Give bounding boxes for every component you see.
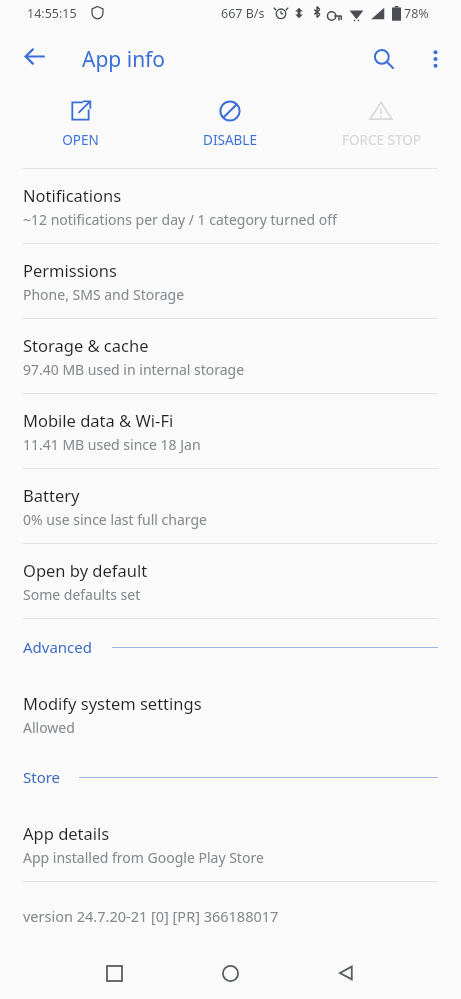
button[interactable]: Mobile data & Wi-Fi: [0, 394, 461, 468]
staticText: Advanced: [23, 637, 93, 657]
staticText: Mobile data & Wi-Fi: [23, 409, 174, 431]
button[interactable]: Modify system settings: [0, 677, 461, 751]
staticText: 97.40 MB used in internal storage: [23, 360, 245, 379]
staticText: FORCE STOP: [342, 131, 421, 149]
staticText: App installed from Google Play Store: [23, 848, 264, 867]
staticText: 14:55:15: [27, 5, 77, 22]
button[interactable]: FORCE STOP: [309, 85, 453, 157]
staticText: DISABLE: [203, 131, 257, 149]
staticText: Permissions: [23, 259, 117, 281]
button[interactable]: OPEN: [8, 85, 152, 157]
staticText: version 24.7.20-21 [0] [PR] 366188017: [23, 906, 279, 926]
button[interactable]: Notifications: [0, 169, 461, 243]
staticText: ~12 notifications per day / 1 category t…: [23, 210, 337, 229]
button[interactable]: App details: [0, 807, 461, 881]
staticText: Battery: [23, 484, 80, 506]
staticText: Notifications: [23, 184, 122, 206]
button[interactable]: Open by default: [0, 544, 461, 618]
staticText: 0% use since last full charge: [23, 510, 207, 529]
button[interactable]: Home: [207, 950, 253, 996]
button[interactable]: Back: [10, 32, 58, 80]
button[interactable]: Recent apps: [91, 950, 137, 996]
button[interactable]: Storage & cache: [0, 319, 461, 393]
button[interactable]: More options: [412, 35, 459, 82]
staticText: App details: [23, 822, 110, 844]
button[interactable]: DISABLE: [158, 85, 302, 157]
staticText: Store: [23, 767, 61, 787]
staticText: 667 B/s: [221, 5, 265, 22]
staticText: Storage & cache: [23, 334, 149, 356]
staticText: Open by default: [23, 559, 148, 581]
staticText: App info: [82, 45, 166, 74]
button[interactable]: Back: [323, 950, 369, 996]
button[interactable]: Search: [360, 35, 407, 82]
button[interactable]: Permissions: [0, 244, 461, 318]
staticText: Phone, SMS and Storage: [23, 285, 185, 304]
staticText: Modify system settings: [23, 692, 202, 714]
staticText: 11.41 MB used since 18 Jan: [23, 435, 201, 454]
button[interactable]: Battery: [0, 469, 461, 543]
staticText: OPEN: [62, 131, 99, 149]
staticText: Some defaults set: [23, 585, 141, 604]
staticText: 78%: [404, 5, 429, 22]
staticText: Allowed: [23, 718, 75, 737]
